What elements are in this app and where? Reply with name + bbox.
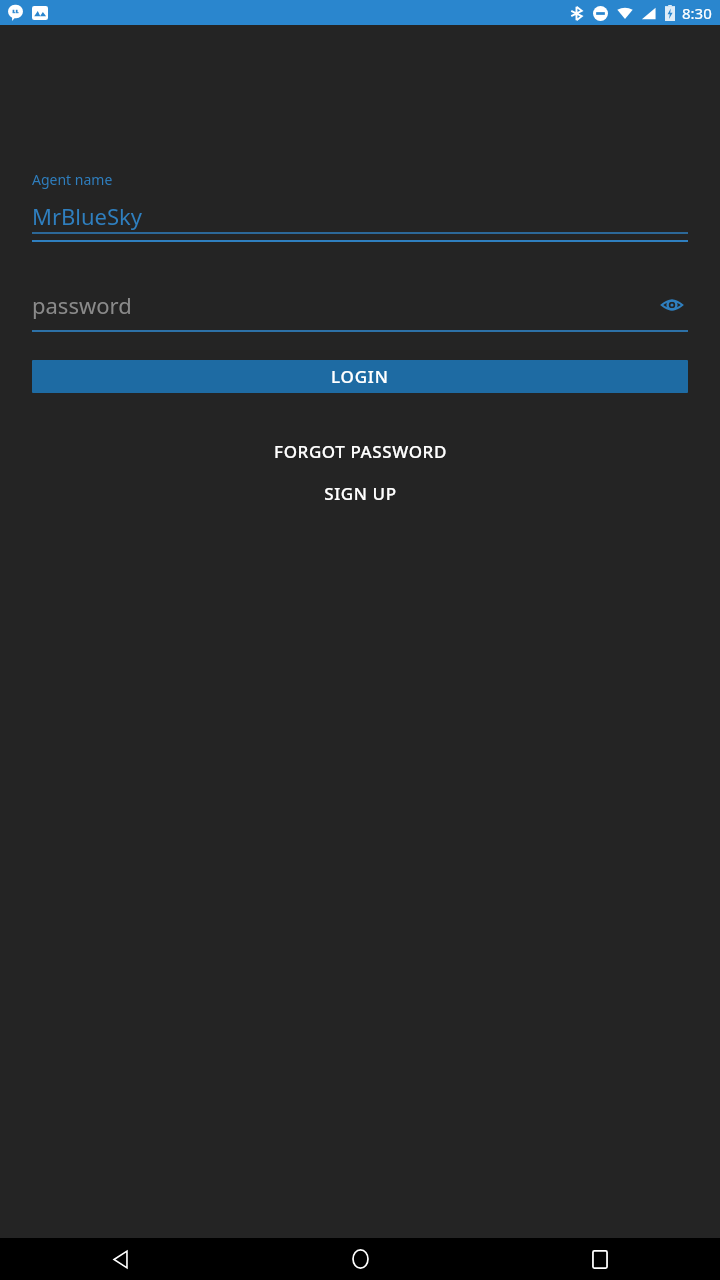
button[interactable]: password: [32, 288, 688, 332]
staticText: Agent name: [32, 170, 113, 189]
staticText: password: [32, 290, 132, 320]
staticText: MrBlueSky: [32, 201, 143, 231]
button[interactable]: FORGOT PASSWORD: [0, 437, 720, 465]
staticText: 8:30: [682, 3, 712, 23]
button[interactable]: SIGN UP: [0, 479, 720, 507]
button[interactable]: Back: [0, 1238, 240, 1280]
staticText: LOGIN: [331, 365, 389, 388]
button[interactable]: Show password: [656, 289, 688, 321]
staticText: SIGN UP: [324, 482, 397, 505]
button[interactable]: Home: [240, 1238, 480, 1280]
button[interactable]: Recents: [480, 1238, 720, 1280]
button[interactable]: Agent name: [32, 170, 688, 242]
button[interactable]: LOGIN: [32, 360, 688, 393]
staticText: FORGOT PASSWORD: [274, 440, 447, 463]
